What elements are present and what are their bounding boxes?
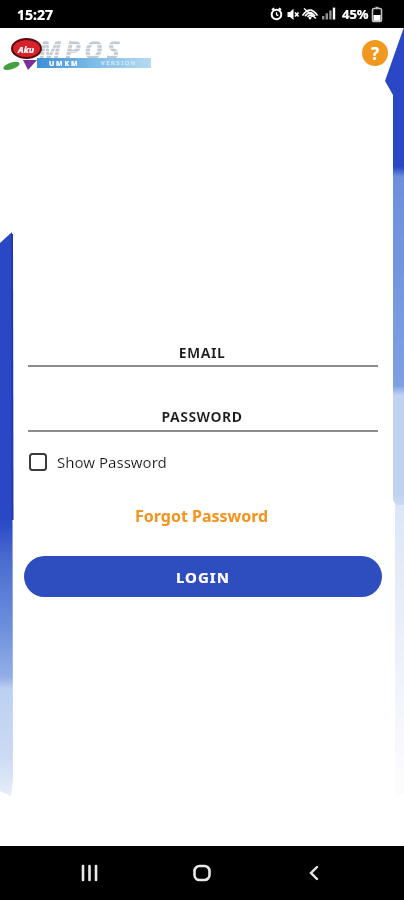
staticText: U M K M (49, 59, 78, 69)
button[interactable] (184, 855, 220, 891)
staticText: PASSWORD (0, 407, 404, 426)
staticText: ? (371, 42, 380, 65)
staticText: Show Password (57, 452, 167, 472)
button[interactable]: LOGIN (24, 556, 382, 597)
button[interactable]: ? (362, 40, 388, 66)
staticText: 45% (342, 5, 369, 23)
staticText: MPOS (39, 32, 124, 66)
staticText: LOGIN (176, 567, 230, 587)
button[interactable] (72, 855, 108, 891)
staticText: EMAIL (0, 343, 404, 362)
staticText: V E R S I O N (101, 59, 136, 67)
button[interactable] (296, 855, 332, 891)
staticText: 15:27 (17, 5, 53, 24)
button[interactable]: Show Password (29, 452, 167, 472)
button[interactable]: Forgot Password (135, 505, 269, 527)
staticText: Aku (18, 43, 35, 55)
